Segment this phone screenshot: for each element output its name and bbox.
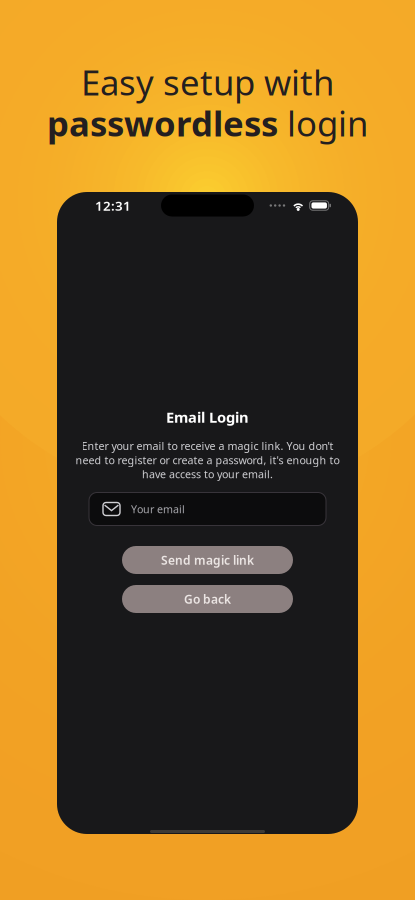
staticText: 12:31 xyxy=(95,197,131,214)
staticText: Email Login xyxy=(166,407,249,427)
staticText: Send magic link xyxy=(161,552,254,568)
staticText: Your email xyxy=(131,502,185,516)
staticText: need to register or create a password, i… xyxy=(75,453,339,467)
staticText: passwordless xyxy=(47,100,287,146)
staticText: Easy setup with xyxy=(81,59,334,105)
button[interactable]: Go back xyxy=(122,585,293,613)
staticText: Enter your email to receive a magic link… xyxy=(81,439,333,453)
button[interactable]: Your email xyxy=(89,492,326,525)
staticText: login xyxy=(287,100,368,146)
staticText: Go back xyxy=(184,591,231,607)
button[interactable]: Send magic link xyxy=(122,546,293,574)
staticText: have access to your email. xyxy=(142,467,273,481)
